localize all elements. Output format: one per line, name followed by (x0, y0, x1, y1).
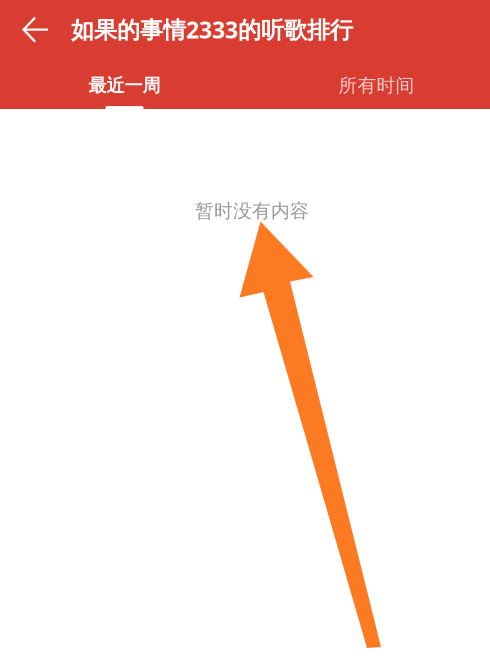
staticText: 如果的事情2333的听歌排行 (71, 14, 353, 45)
button[interactable]: 最近一周 (69, 52, 179, 109)
staticText: 所有时间 (338, 74, 414, 97)
button[interactable]: Back (7, 3, 63, 55)
staticText: 暂时没有内容 (195, 199, 309, 223)
staticText: 最近一周 (88, 74, 160, 97)
button[interactable]: 所有时间 (321, 52, 431, 109)
